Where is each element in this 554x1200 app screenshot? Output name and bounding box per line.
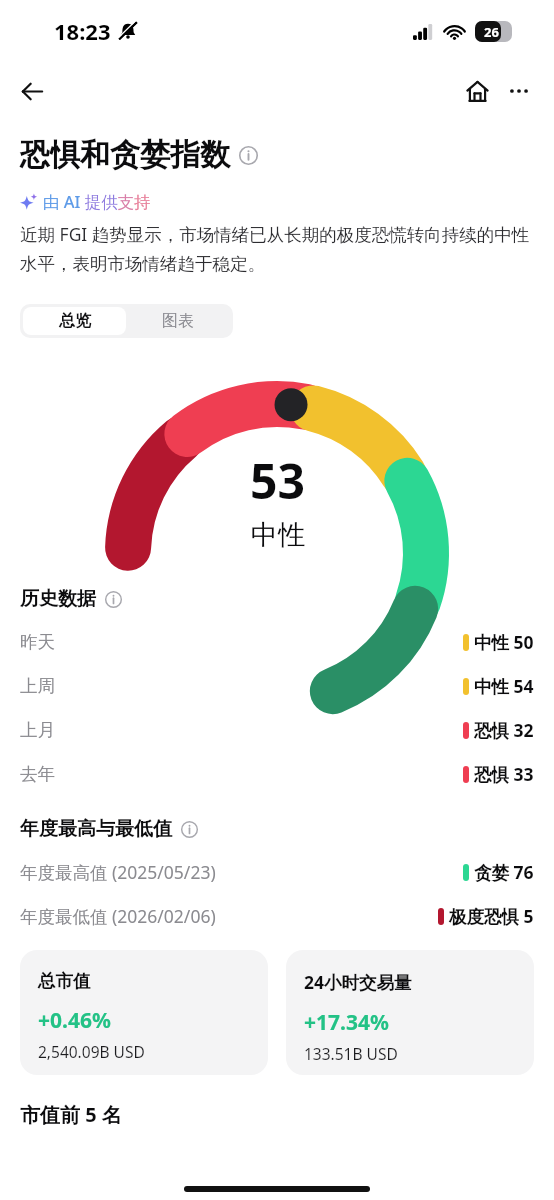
staticText: 近期 FGI 趋势显示，市场情绪已从长期的极度恐慌转向持续的中性水平，表明市场情…: [20, 222, 534, 275]
staticText: +0.46%: [38, 1006, 111, 1035]
staticText: 中性 54: [474, 674, 534, 698]
staticText: 18:23: [54, 16, 111, 46]
staticText: 昨天: [20, 631, 55, 653]
button[interactable]: 上月: [0, 708, 554, 752]
button[interactable]: More options: [498, 70, 540, 112]
button[interactable]: Back: [10, 69, 54, 113]
button[interactable]: 上周: [0, 664, 554, 708]
staticText: 53: [250, 448, 305, 513]
staticText: +17.34%: [304, 1008, 389, 1037]
staticText: 历史数据: [20, 587, 96, 611]
staticText: 由 AI 提供支持: [43, 190, 151, 213]
staticText: 图表: [162, 311, 194, 331]
staticText: 中性 50: [474, 630, 534, 654]
staticText: 中性: [251, 518, 305, 552]
button[interactable]: 图表: [126, 307, 230, 335]
staticText: 极度恐惧 5: [449, 904, 534, 928]
button[interactable]: 昨天: [0, 620, 554, 664]
staticText: 年度最低值 (2026/02/06): [20, 904, 216, 928]
staticText: 上月: [20, 719, 55, 741]
staticText: 恐惧和贪婪指数: [20, 136, 230, 174]
staticText: 133.51B USD: [304, 1043, 398, 1064]
button[interactable]: 24小时交易量: [286, 950, 534, 1075]
staticText: 年度最高值 (2025/05/23): [20, 860, 216, 884]
staticText: 年度最高与最低值: [20, 817, 172, 841]
staticText: 总市值: [38, 970, 91, 992]
staticText: 总览: [59, 311, 91, 331]
staticText: 上周: [20, 675, 55, 697]
staticText: 贪婪 76: [474, 860, 534, 884]
staticText: 去年: [20, 763, 55, 785]
button[interactable]: 年度最高值 (2025/05/23): [0, 850, 554, 894]
staticText: 恐惧 32: [474, 718, 534, 742]
staticText: 恐惧 33: [474, 762, 534, 786]
button[interactable]: 总市值: [20, 950, 268, 1075]
button[interactable]: 总览: [23, 307, 126, 335]
button[interactable]: 去年: [0, 752, 554, 796]
staticText: 26: [484, 23, 499, 41]
staticText: 市值前 5 名: [20, 1101, 122, 1128]
button[interactable]: 年度最低值 (2026/02/06): [0, 894, 554, 938]
staticText: 2,540.09B USD: [38, 1041, 145, 1062]
button[interactable]: Home: [456, 70, 498, 112]
staticText: 24小时交易量: [304, 970, 412, 994]
